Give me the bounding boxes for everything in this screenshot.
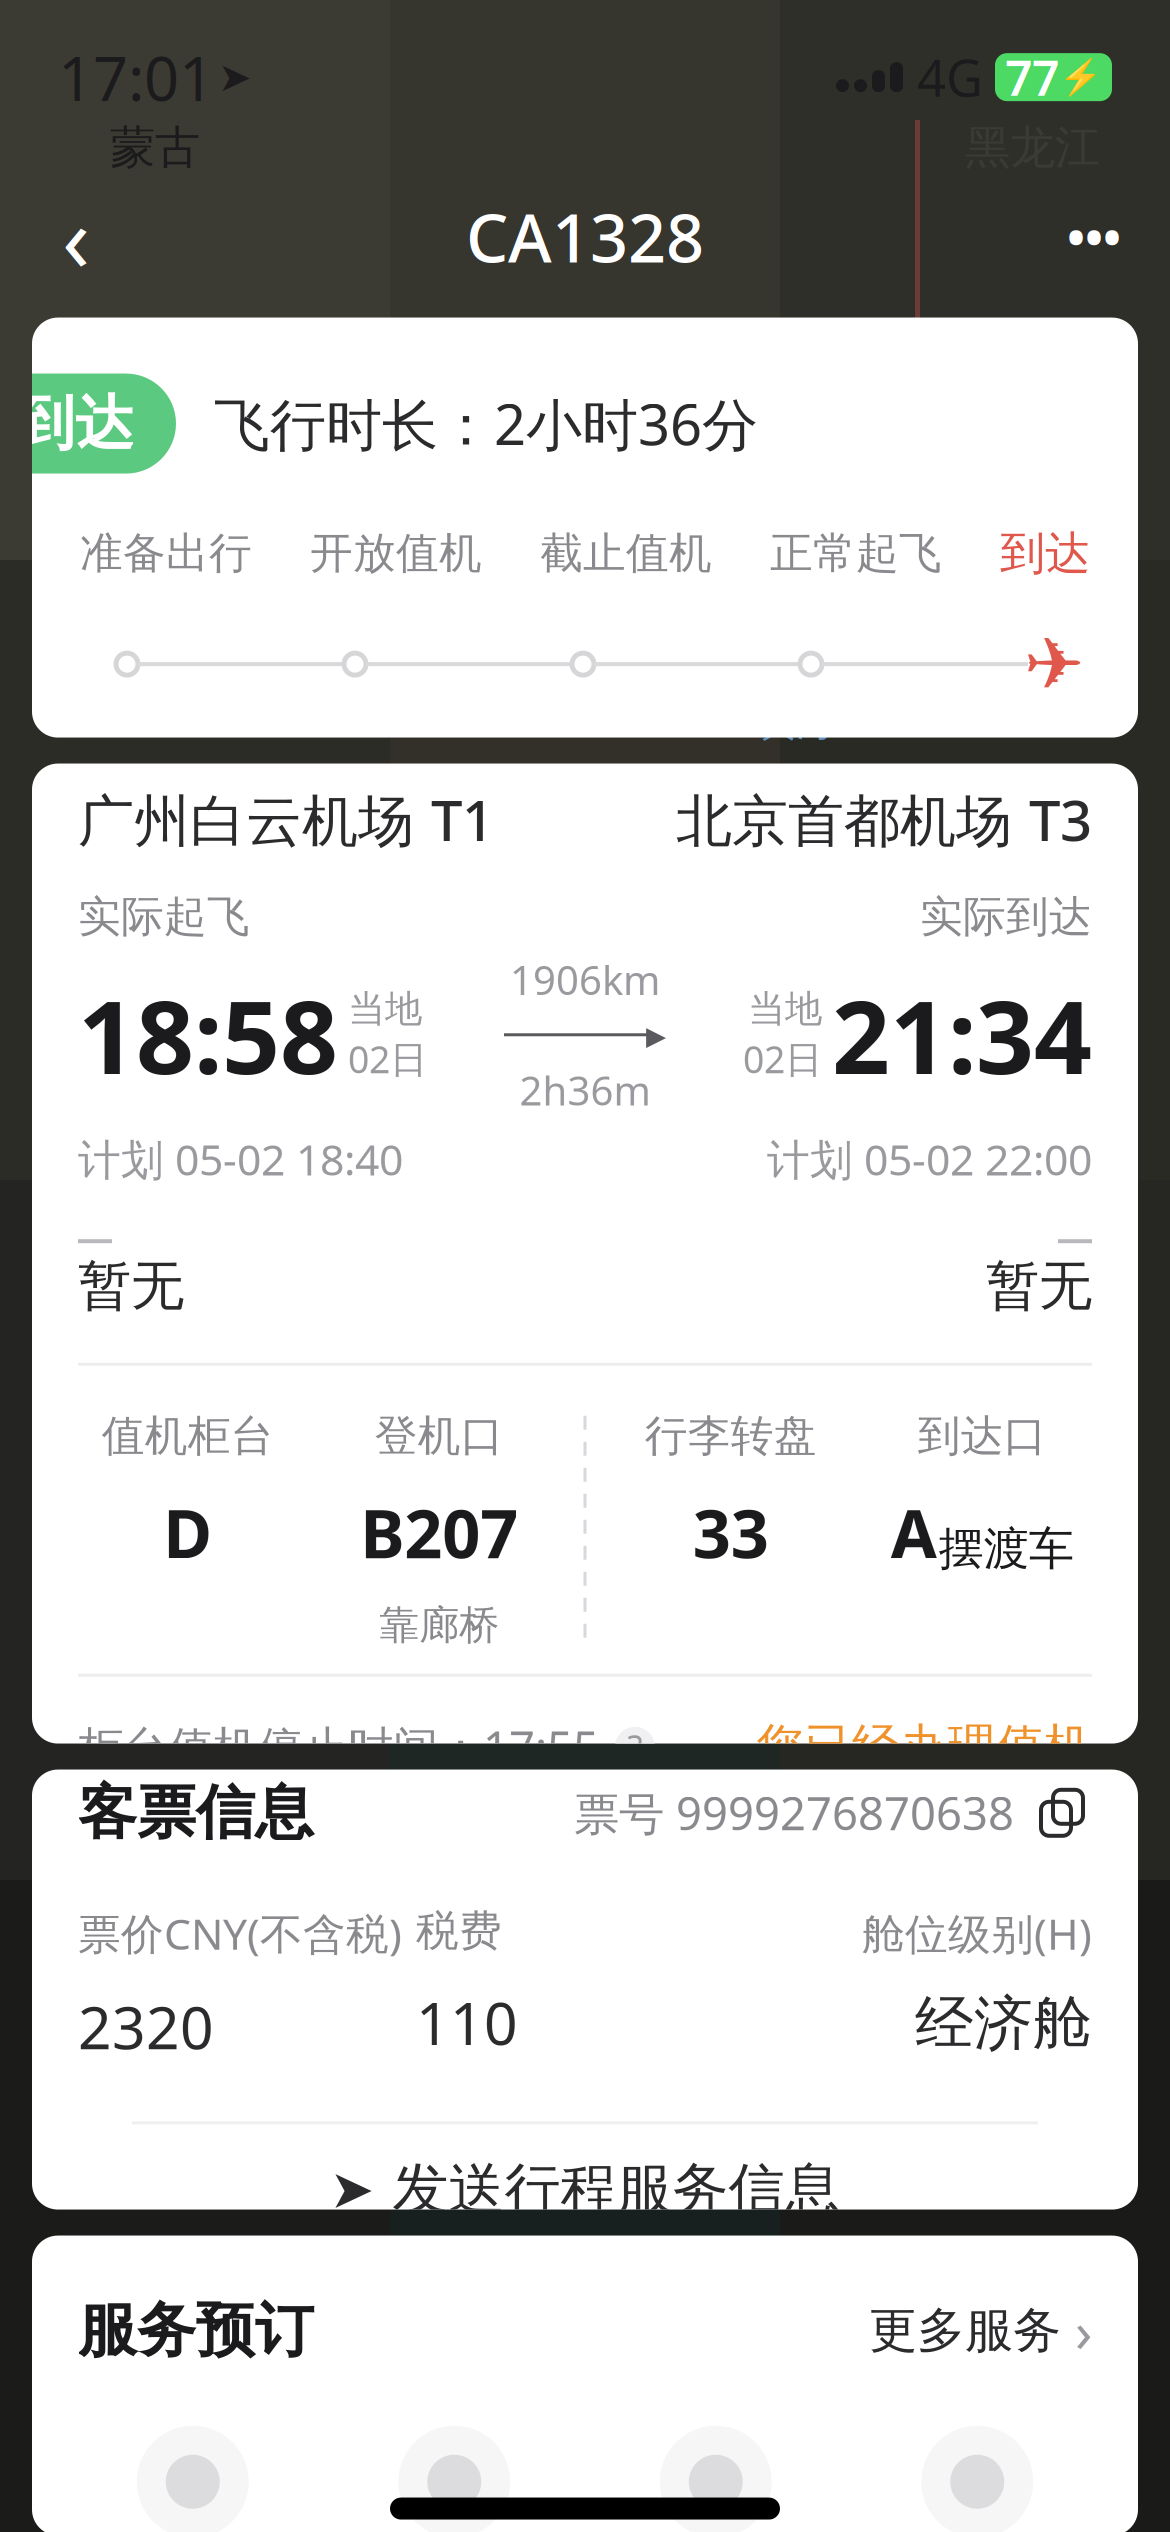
staticText: 客票信息 <box>78 1777 314 1849</box>
staticText: 广州白云机场 T1 <box>78 782 494 856</box>
staticText: D <box>163 1488 212 1577</box>
staticText: 计划 05-02 22:00 <box>767 1131 1092 1187</box>
staticText: 票价CNY(不含税) <box>78 1905 402 1961</box>
staticText: 北京首都机场 T3 <box>676 782 1092 856</box>
staticText: 税费 <box>416 1905 502 1957</box>
staticText: 计划 05-02 18:40 <box>78 1131 403 1187</box>
staticText: 实际到达 <box>920 890 1092 943</box>
staticText: ✈ <box>1024 623 1084 705</box>
staticText: 到达 <box>16 387 134 460</box>
staticText: 登机口 <box>375 1410 504 1462</box>
staticText: 靠廊桥 <box>379 1601 499 1650</box>
staticText: 110 <box>416 1983 518 2061</box>
staticText: 票号 9999276870638 <box>574 1783 1014 1843</box>
staticText: 暂无 <box>986 1253 1092 1319</box>
staticText: 当地 <box>348 986 422 1032</box>
staticText: ▸ <box>646 1012 666 1057</box>
staticText: 1906km <box>510 953 660 1006</box>
staticText: 2320 <box>78 1987 214 2065</box>
staticText: 柜台值机停止时间：17:55 <box>78 1717 599 1777</box>
staticText: 2h36m <box>519 1063 650 1116</box>
staticText: 17:01 <box>58 36 214 118</box>
staticText: ➤ <box>329 2159 374 2220</box>
button[interactable]: Check-in help <box>615 1727 655 1767</box>
staticText: 正常起飞 <box>770 527 942 580</box>
staticText: 33 <box>693 1488 769 1577</box>
staticText: 实际起飞 <box>78 890 250 943</box>
button[interactable]: 更多服务 <box>869 2293 1092 2368</box>
staticText: 准备出行 <box>80 527 252 580</box>
staticText: ➤ <box>218 54 252 100</box>
staticText: 发送行程服务信息 <box>392 2155 840 2224</box>
staticText: 您已经办理值机 <box>756 1717 1092 1776</box>
staticText: 4G <box>917 43 983 111</box>
staticText: 经济舱 <box>915 1987 1092 2060</box>
staticText: 到达口 <box>918 1410 1047 1462</box>
staticText: 暂无 <box>78 1253 184 1319</box>
staticText: 到达 <box>1000 526 1090 581</box>
staticText: B207 <box>360 1488 518 1577</box>
staticText: 摆渡车 <box>939 1521 1074 1577</box>
staticText: ? <box>627 1724 642 1770</box>
button[interactable]: Back <box>28 189 124 285</box>
staticText: A <box>891 1488 937 1577</box>
staticText: 黑龙江 <box>965 120 1100 176</box>
staticText: ‹ <box>62 176 90 297</box>
button[interactable]: 您已经办理值机 <box>756 1717 1092 1776</box>
staticText: 当地 <box>748 986 822 1032</box>
staticText: CA1328 <box>466 192 704 281</box>
button[interactable]: More options <box>1046 189 1142 285</box>
staticText: 舱位级别(H) <box>862 1905 1092 1961</box>
staticText: 02日 <box>348 1034 427 1083</box>
staticText: 值机柜台 <box>102 1410 274 1462</box>
staticText: ⚡ <box>1059 57 1102 97</box>
button[interactable]: Copy ticket number <box>1032 1783 1092 1843</box>
staticText: 开放值机 <box>310 527 482 580</box>
staticText: 截止值机 <box>540 527 712 580</box>
staticText: 更多服务 <box>869 2301 1061 2360</box>
button[interactable]: ➤ <box>32 2124 1138 2254</box>
staticText: 飞行时长：2小时36分 <box>214 386 758 461</box>
staticText: 18:58 <box>78 967 338 1102</box>
staticText: 行李转盘 <box>645 1410 817 1462</box>
staticText: 02日 <box>743 1034 822 1083</box>
staticText: 77 <box>1005 45 1059 109</box>
staticText: 黄海 <box>760 700 834 746</box>
staticText: 蒙古 <box>110 120 200 176</box>
staticText: › <box>1075 2293 1092 2368</box>
staticText: 21:34 <box>832 967 1092 1102</box>
staticText: 服务预订 <box>78 2294 314 2367</box>
staticText: ••• <box>1067 205 1121 268</box>
